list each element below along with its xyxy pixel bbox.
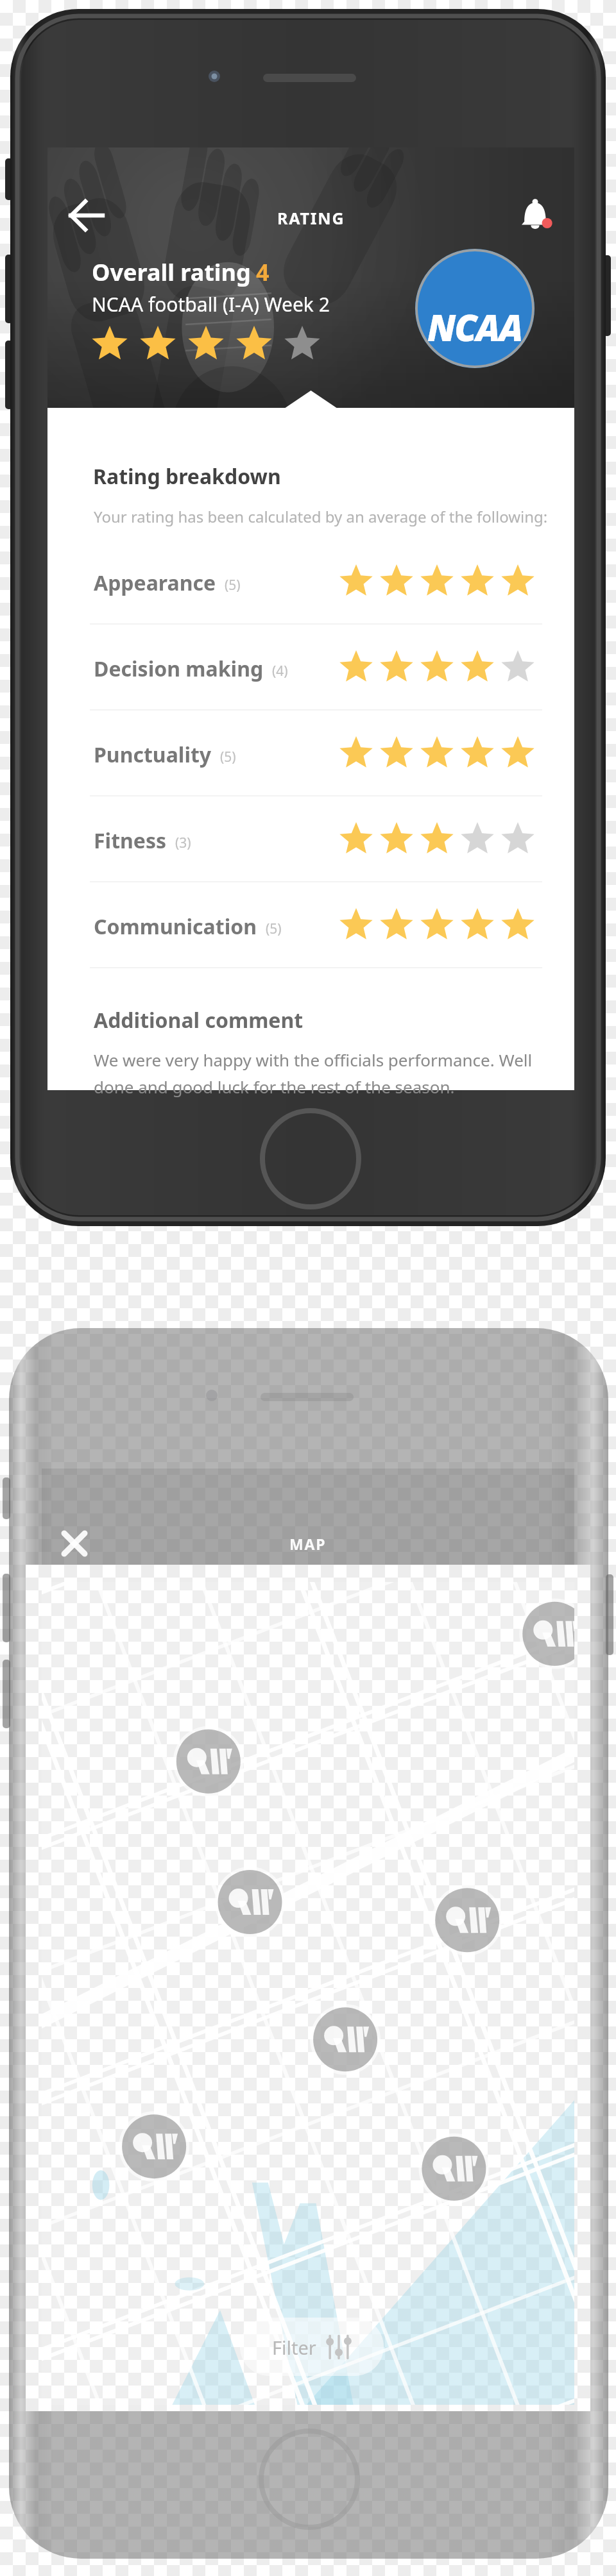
staticText: We were very happy with the officials pe… [94,1048,543,1099]
staticText: Communication [94,913,257,941]
staticText: Your rating has been calculated by an av… [94,506,548,527]
button[interactable]: Punctuality [47,711,574,796]
staticText: Rating breakdown [93,462,281,491]
button[interactable]: Notifications [518,196,556,235]
staticText: Additional comment [94,1006,304,1034]
button[interactable]: NCAA [415,249,535,368]
staticText: MAP [289,1534,327,1554]
staticText: NCAA football (I-A) Week 2 [92,291,330,317]
staticText: (4) [272,662,288,680]
staticText: (5) [220,748,236,766]
button[interactable]: Communication [47,882,574,968]
button[interactable]: Appearance [47,539,574,625]
staticText: (3) [175,834,191,852]
staticText: Punctuality [94,741,212,769]
staticText: 4 [256,257,269,288]
staticText: Decision making [94,655,264,683]
button[interactable]: Close [52,1521,97,1566]
button[interactable]: Decision making [47,625,574,711]
button[interactable]: Fitness [47,796,574,882]
staticText: Fitness [94,827,167,855]
staticText: NCAA [427,303,522,351]
button[interactable]: Filter [240,2318,384,2376]
staticText: (5) [225,576,241,594]
button[interactable]: Back [69,193,114,238]
staticText: RATING [277,207,345,229]
staticText: Appearance [94,569,216,597]
staticText: (5) [266,920,282,938]
staticText: Overall rating [92,257,257,288]
staticText: Filter [272,2335,316,2360]
